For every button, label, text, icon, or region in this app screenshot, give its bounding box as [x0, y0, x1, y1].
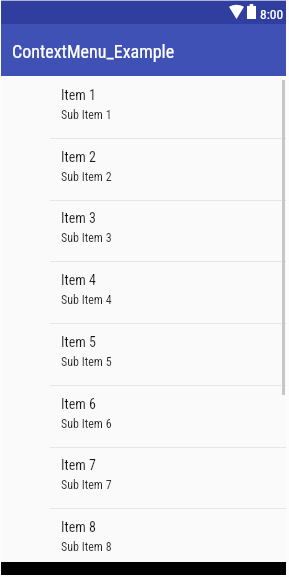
button[interactable]: Item 7 — [1, 447, 286, 509]
staticText: Item 3 — [61, 210, 96, 226]
button[interactable]: Item 4 — [1, 262, 286, 324]
staticText: Sub Item 5 — [61, 355, 112, 369]
staticText: Sub Item 1 — [61, 108, 112, 122]
staticText: ContextMenu_Example — [12, 41, 175, 62]
button[interactable]: Item 5 — [1, 324, 286, 386]
staticText: Item 6 — [61, 396, 96, 412]
staticText: Item 2 — [61, 149, 96, 165]
button[interactable]: Item 8 — [1, 509, 286, 571]
button[interactable]: Item 9 — [1, 571, 286, 577]
staticText: 8:00 — [260, 6, 284, 22]
staticText: Sub Item 4 — [61, 293, 112, 307]
button[interactable]: Item 6 — [1, 386, 286, 448]
other: Battery — [247, 4, 256, 19]
staticText: Item 1 — [61, 87, 96, 103]
staticText: Sub Item 7 — [61, 478, 112, 492]
staticText: Item 8 — [61, 519, 96, 535]
other: Wi-Fi — [229, 4, 244, 19]
staticText: Item 4 — [61, 272, 96, 288]
staticText: Sub Item 6 — [61, 417, 112, 431]
staticText: Sub Item 8 — [61, 540, 112, 554]
button[interactable]: Item 2 — [1, 139, 286, 201]
staticText: Item 5 — [61, 334, 96, 350]
staticText: Item 7 — [61, 457, 96, 473]
button[interactable]: Item 1 — [1, 77, 286, 139]
button[interactable]: Item 3 — [1, 200, 286, 262]
button[interactable]: ContextMenu_Example — [1, 24, 286, 76]
staticText: Sub Item 2 — [61, 170, 112, 184]
staticText: Sub Item 3 — [61, 231, 112, 245]
